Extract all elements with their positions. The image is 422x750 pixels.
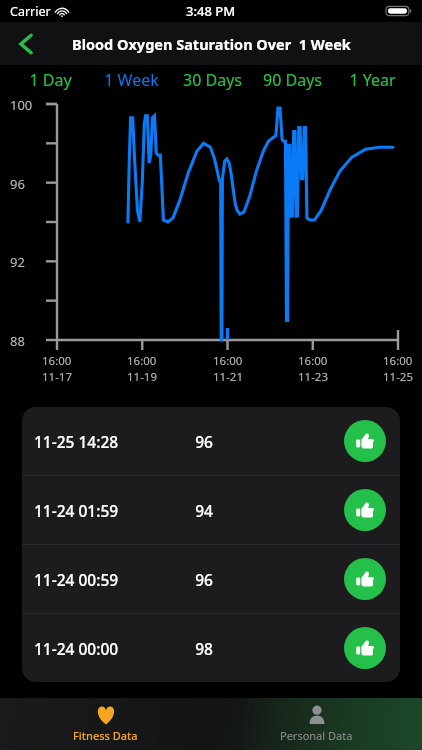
button[interactable]: Personal Data — [211, 698, 422, 750]
staticText: 11-17 — [42, 369, 73, 385]
staticText: 96 — [10, 175, 25, 193]
staticText: 1 Day — [29, 69, 72, 91]
staticText: 88 — [10, 332, 25, 350]
staticText: 1 Week — [104, 69, 159, 91]
staticText: 11-24 01:59 — [34, 500, 154, 521]
staticText: 16:00 — [42, 353, 72, 369]
button[interactable]: 1 Day — [10, 65, 91, 95]
staticText: 90 Days — [263, 69, 322, 91]
staticText: 1 Year — [349, 69, 396, 91]
staticText: 96 — [154, 569, 254, 590]
staticText: 11-23 — [298, 369, 329, 385]
button[interactable]: 11-25 14:28 — [22, 407, 400, 475]
staticText: Fitness Data — [73, 728, 138, 743]
button[interactable]: 11-24 00:00 — [22, 614, 400, 682]
button[interactable]: Fitness Data — [0, 698, 211, 750]
staticText: 96 — [154, 431, 254, 452]
staticText: Blood Oxygen Saturation Over 1 Week — [72, 34, 351, 54]
button[interactable]: 11-24 01:59 — [22, 476, 400, 544]
staticText: 16:00 — [127, 353, 157, 369]
other: Normal — [344, 627, 386, 669]
staticText: 11-19 — [127, 369, 158, 385]
staticText: 92 — [10, 253, 25, 271]
button[interactable]: 30 Days — [172, 65, 252, 95]
staticText: 100 — [10, 96, 33, 114]
staticText: 11-25 14:28 — [34, 431, 154, 452]
staticText: 94 — [154, 500, 254, 521]
staticText: 30 Days — [183, 69, 242, 91]
staticText: Carrier — [10, 3, 51, 20]
staticText: 11-25 — [383, 369, 414, 385]
other: Normal — [344, 420, 386, 462]
button[interactable]: 1 Year — [332, 65, 412, 95]
button[interactable]: 11-24 00:59 — [22, 545, 400, 613]
button[interactable]: Back — [4, 22, 48, 65]
other: Normal — [344, 489, 386, 531]
staticText: 11-21 — [213, 369, 244, 385]
button[interactable]: 1 Week — [91, 65, 172, 95]
staticText: 3:48 PM — [186, 2, 236, 20]
staticText: 11-24 00:59 — [34, 569, 154, 590]
staticText: 16:00 — [383, 353, 413, 369]
staticText: 11-24 00:00 — [34, 638, 154, 659]
staticText: 98 — [154, 638, 254, 659]
staticText: 16:00 — [298, 353, 328, 369]
staticText: Personal Data — [280, 728, 353, 743]
staticText: 16:00 — [213, 353, 243, 369]
button[interactable]: 90 Days — [252, 65, 332, 95]
other: Normal — [344, 558, 386, 600]
